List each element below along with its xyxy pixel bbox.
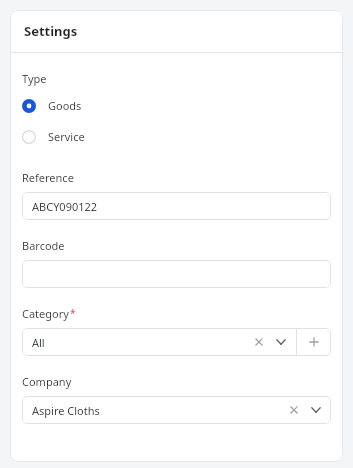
- staticText: Reference: [22, 170, 74, 185]
- button[interactable]: Open dropdown: [307, 401, 325, 419]
- button[interactable]: Service: [22, 125, 331, 148]
- staticText: Settings: [24, 22, 78, 40]
- staticText: Goods: [48, 98, 82, 113]
- button[interactable]: Aspire Cloths: [22, 396, 331, 424]
- button[interactable]: Open dropdown: [272, 333, 290, 351]
- button[interactable]: Goods: [22, 94, 331, 117]
- button[interactable]: Add category: [297, 328, 331, 356]
- staticText: Barcode: [22, 238, 65, 253]
- button[interactable]: Clear: [285, 401, 303, 419]
- staticText: *: [70, 306, 76, 320]
- button[interactable]: All: [22, 328, 296, 356]
- staticText: All: [32, 335, 250, 350]
- button[interactable]: ABCY090122: [22, 192, 331, 220]
- button[interactable]: Clear: [250, 333, 268, 351]
- staticText: Company: [22, 374, 72, 389]
- staticText: ABCY090122: [32, 199, 98, 214]
- staticText: Type: [22, 71, 47, 86]
- staticText: Service: [48, 129, 85, 144]
- staticText: Category: [22, 306, 69, 321]
- button[interactable]: [22, 260, 331, 288]
- staticText: Aspire Cloths: [32, 403, 285, 418]
